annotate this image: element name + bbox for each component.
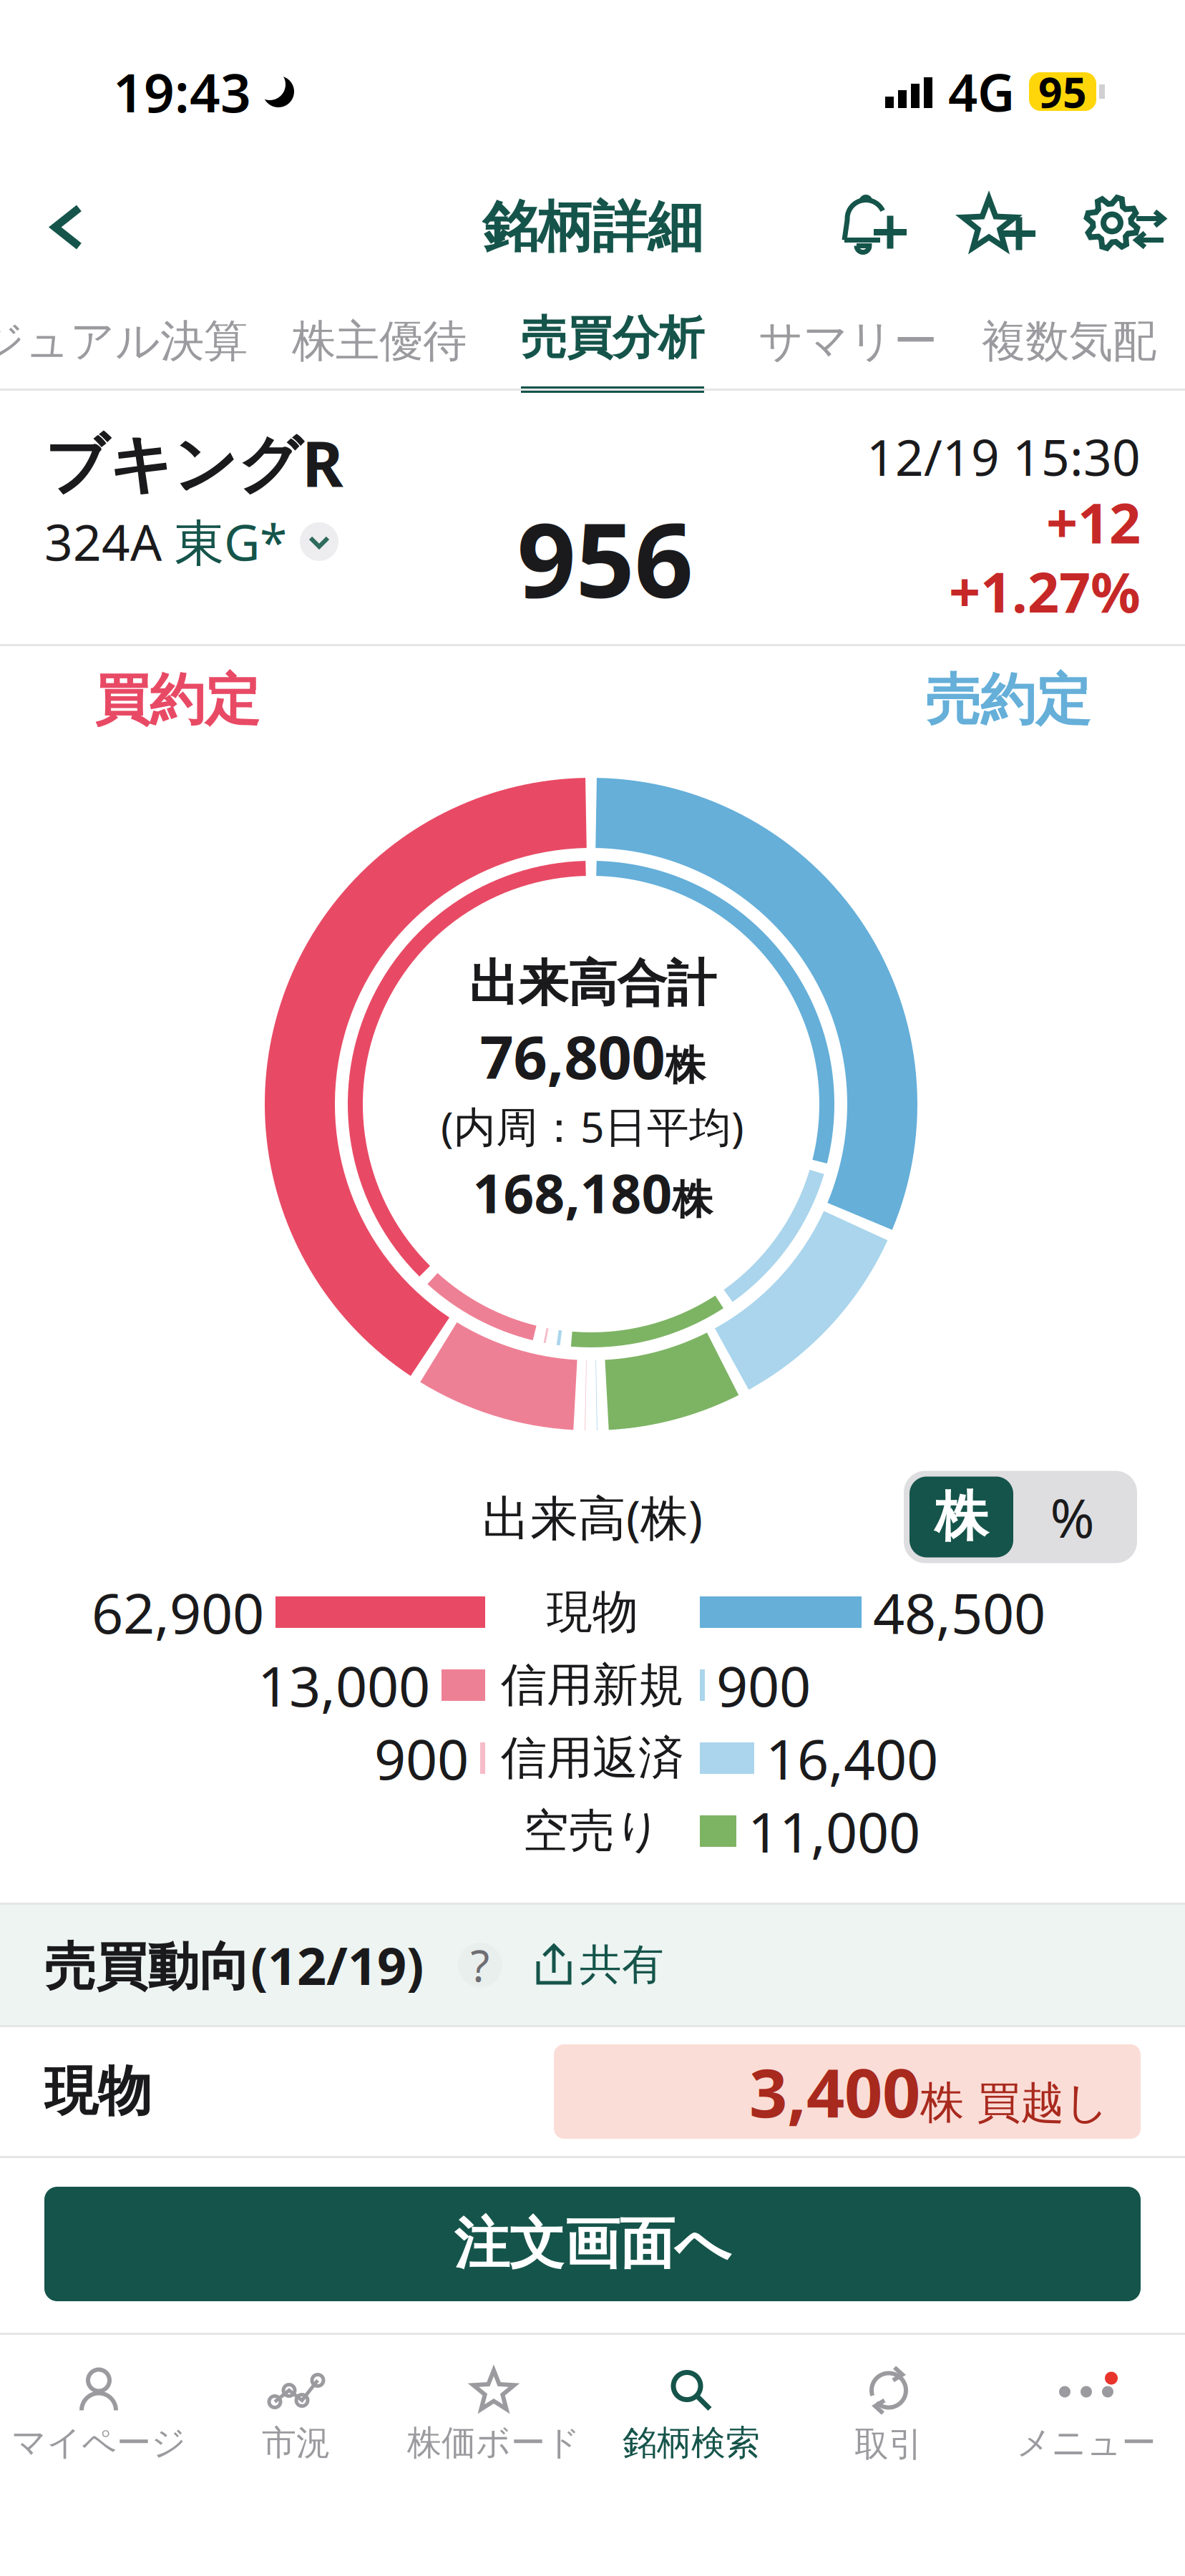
staticText: ? xyxy=(470,1936,490,1994)
staticText: 株主優待 xyxy=(292,314,467,368)
staticText: 900 xyxy=(374,1721,469,1795)
staticText: (内周：5日平均) xyxy=(441,1098,744,1154)
staticText: 信用返済 xyxy=(501,1730,684,1786)
button[interactable]: % xyxy=(1013,1477,1131,1557)
button[interactable]: 株価ボード xyxy=(395,2356,592,2464)
staticText: 3,400 xyxy=(749,2047,920,2136)
button[interactable]: ジュアル決算 xyxy=(0,290,248,393)
staticText: 信用新規 xyxy=(501,1657,684,1713)
button[interactable]: 注文画面へ xyxy=(44,2187,1141,2301)
button[interactable]: 設定 xyxy=(1081,189,1169,266)
staticText: 株価ボード xyxy=(407,2422,580,2464)
staticText: ジュアル決算 xyxy=(0,314,248,368)
staticText: 956 xyxy=(517,489,693,626)
button[interactable]: 取引 xyxy=(790,2355,987,2465)
staticText: 現物 xyxy=(547,1584,638,1640)
staticText: サマリー xyxy=(759,314,937,368)
staticText: 16,400 xyxy=(766,1721,938,1795)
staticText: 銘柄詳細 xyxy=(482,193,703,261)
staticText: 東G* xyxy=(175,509,287,575)
staticText: 注文画面へ xyxy=(454,2210,731,2278)
button[interactable]: 市況 xyxy=(197,2356,395,2464)
button[interactable]: サマリー xyxy=(759,290,937,393)
staticText: 空売り xyxy=(523,1803,662,1859)
staticText: 19:43 xyxy=(113,56,251,127)
staticText: % xyxy=(1050,1481,1094,1552)
staticText: 株 買越し xyxy=(920,2076,1109,2130)
staticText: マイページ xyxy=(11,2422,186,2464)
staticText: 900 xyxy=(716,1648,811,1722)
staticText: 95 xyxy=(1038,64,1087,119)
staticText: 共有 xyxy=(580,1939,664,1991)
staticText: 出来高合計 xyxy=(469,953,716,1014)
button[interactable]: 共有 xyxy=(502,1939,664,1991)
staticText: 76,800 xyxy=(480,1017,665,1096)
staticText: +1.27% xyxy=(949,554,1141,628)
staticText: 出来高(株) xyxy=(482,1485,703,1549)
staticText: 13,000 xyxy=(258,1648,430,1722)
staticText: 取引 xyxy=(854,2423,923,2465)
button[interactable]: アラート追加 xyxy=(834,189,915,266)
button[interactable]: 複数気配 xyxy=(982,290,1156,393)
staticText: 12/19 15:30 xyxy=(867,424,1141,490)
staticText: 売買分析 xyxy=(521,310,704,366)
staticText: 168,180 xyxy=(473,1157,672,1228)
staticText: 324A xyxy=(44,509,162,575)
button[interactable]: ヘルプ xyxy=(424,1943,502,1987)
staticText: 株 xyxy=(672,1175,712,1224)
staticText: メニュー xyxy=(1016,2422,1156,2464)
staticText: ブキングR xyxy=(44,421,343,504)
staticText: 株 xyxy=(935,1484,988,1550)
staticText: 複数気配 xyxy=(982,314,1156,368)
staticText: 買約定 xyxy=(94,666,260,734)
staticText: 市況 xyxy=(262,2422,331,2464)
button[interactable]: 銘柄検索 xyxy=(592,2356,790,2464)
staticText: +12 xyxy=(1046,485,1141,559)
button[interactable]: 売買分析 xyxy=(511,290,714,393)
staticText: 48,500 xyxy=(873,1575,1045,1649)
button[interactable]: 戻る xyxy=(31,188,104,267)
button[interactable]: 市場を選択 xyxy=(300,522,338,561)
button[interactable]: マイページ xyxy=(0,2356,197,2464)
button[interactable]: メニュー xyxy=(987,2356,1185,2464)
staticText: 銘柄検索 xyxy=(623,2422,760,2464)
button[interactable]: お気に入り追加 xyxy=(959,189,1040,266)
button[interactable]: 株主優待 xyxy=(292,290,467,393)
staticText: 現物 xyxy=(44,2059,152,2124)
staticText: 売約定 xyxy=(925,666,1091,734)
staticText: 62,900 xyxy=(92,1575,264,1649)
staticText: 4G xyxy=(948,57,1015,126)
staticText: 売買動向(12/19) xyxy=(44,1931,424,1999)
staticText: 株 xyxy=(665,1041,705,1090)
button[interactable]: 株 xyxy=(910,1477,1013,1557)
staticText: 11,000 xyxy=(748,1794,920,1868)
